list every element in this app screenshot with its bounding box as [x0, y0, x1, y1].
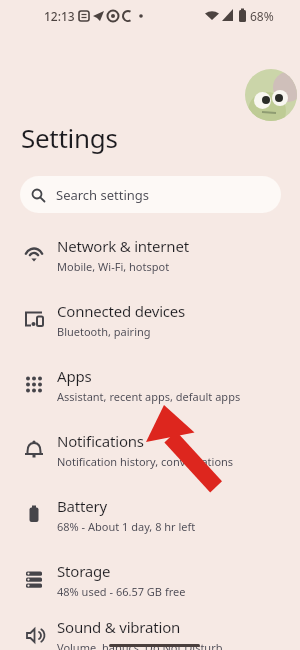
button[interactable]: Network & internet: [0, 222, 300, 287]
button[interactable]: Notifications: [0, 417, 300, 482]
staticText: 48% used - 66.57 GB free: [57, 584, 186, 599]
staticText: Notifications: [57, 431, 144, 451]
staticText: Mobile, Wi-Fi, hotspot: [57, 259, 170, 274]
staticText: Bluetooth, pairing: [57, 324, 151, 339]
button[interactable]: Apps: [0, 352, 300, 417]
staticText: 12:13: [44, 8, 75, 24]
staticText: Sound & vibration: [57, 617, 181, 637]
button[interactable]: Connected devices: [0, 287, 300, 352]
button[interactable]: Sound & vibration: [0, 603, 300, 650]
staticText: Search settings: [56, 186, 150, 204]
staticText: Network & internet: [57, 236, 189, 256]
staticText: Notification history, conversations: [57, 454, 234, 469]
button[interactable]: Storage: [0, 547, 300, 612]
staticText: Storage: [57, 561, 111, 581]
button[interactable]: Battery: [0, 482, 300, 547]
staticText: Assistant, recent apps, default apps: [57, 389, 241, 404]
staticText: Volume, haptics, Do Not Disturb: [57, 640, 223, 650]
staticText: Connected devices: [57, 301, 186, 321]
staticText: Battery: [57, 496, 107, 516]
button[interactable]: Search settings: [20, 176, 281, 213]
staticText: 68% - About 1 day, 8 hr left: [57, 519, 196, 534]
staticText: Settings: [21, 120, 118, 155]
staticText: 68%: [250, 8, 274, 24]
button[interactable]: [245, 69, 297, 121]
staticText: Apps: [57, 366, 92, 386]
